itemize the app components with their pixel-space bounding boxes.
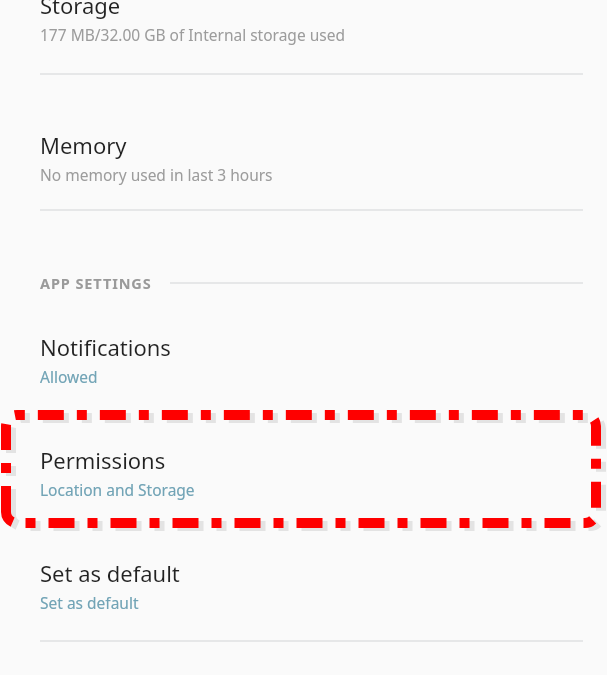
staticText: Permissions <box>40 445 166 475</box>
staticText: Notifications <box>40 332 171 362</box>
staticText: 177 MB/32.00 GB of Internal storage used <box>40 24 345 45</box>
staticText: Memory <box>40 130 127 160</box>
staticText: Set as default <box>40 592 139 613</box>
button[interactable]: Notifications <box>0 324 607 402</box>
button[interactable]: Permissions <box>0 437 607 515</box>
staticText: APP SETTINGS <box>40 273 152 293</box>
staticText: Allowed <box>40 366 98 387</box>
staticText: Set as default <box>40 558 180 588</box>
staticText: No memory used in last 3 hours <box>40 164 273 185</box>
staticText: Location and Storage <box>40 479 195 500</box>
button[interactable]: Storage <box>0 0 607 72</box>
staticText: Storage <box>40 0 121 20</box>
button[interactable]: Memory <box>0 122 607 200</box>
button[interactable]: Set as default <box>0 550 607 628</box>
